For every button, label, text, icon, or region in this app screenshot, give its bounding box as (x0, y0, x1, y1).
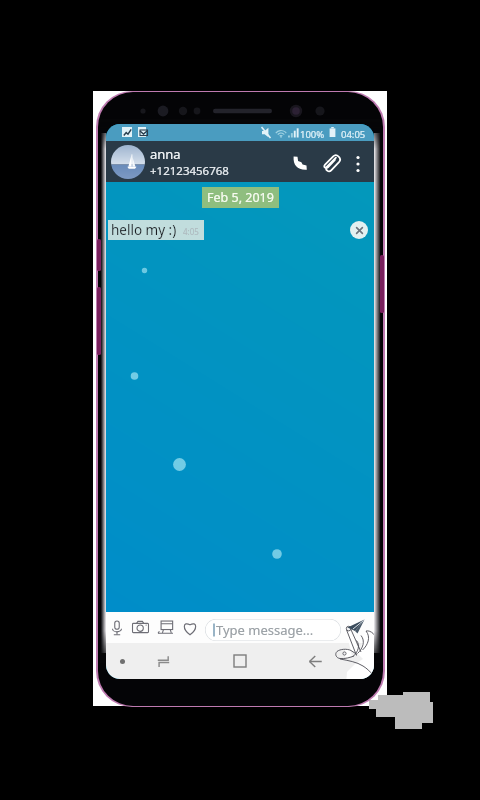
button[interactable]: Back (297, 643, 333, 679)
staticText: Type message... (216, 621, 314, 639)
button[interactable]: Camera (130, 612, 151, 643)
button[interactable]: Close (350, 221, 368, 239)
staticText: +12123456768 (150, 163, 229, 179)
button[interactable]: Type message... (205, 619, 341, 641)
button[interactable]: More options (346, 150, 370, 174)
staticText: 4:05 (183, 226, 199, 237)
button[interactable]: Contact photo (111, 145, 145, 179)
button[interactable]: Send (346, 615, 368, 634)
button[interactable]: hello my :) (111, 221, 199, 239)
button[interactable]: Feb 5, 2019 (207, 189, 274, 206)
staticText: 100% (300, 128, 325, 141)
button[interactable]: Call (287, 149, 313, 175)
staticText: 04:05 (341, 128, 366, 141)
button[interactable]: Attach (317, 149, 343, 175)
staticText: anna (150, 145, 181, 163)
staticText: Feb 5, 2019 (207, 189, 274, 206)
staticText: hello my :) (111, 221, 177, 239)
button[interactable]: Gallery (154, 612, 176, 643)
button[interactable]: Home (222, 643, 258, 679)
button[interactable]: Recents (145, 643, 181, 679)
button[interactable]: Stickers (179, 612, 200, 643)
button[interactable]: Menu (108, 643, 136, 679)
button[interactable]: Voice message (106, 612, 127, 643)
